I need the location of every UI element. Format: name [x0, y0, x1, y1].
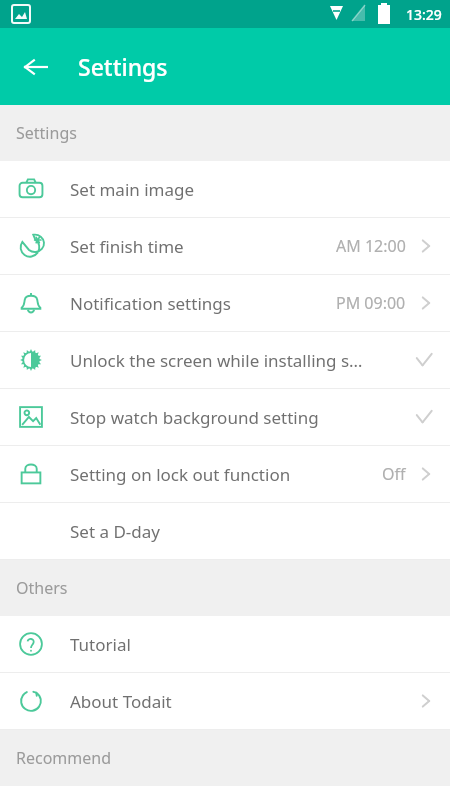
staticText: Off	[382, 463, 406, 485]
staticText: Set finish time	[70, 235, 336, 258]
staticText: Others	[16, 577, 68, 599]
staticText: Set a D-day	[70, 520, 436, 543]
staticText: Stop watch background setting	[70, 406, 412, 429]
staticText: Settings	[16, 122, 77, 144]
staticText: Tutorial	[70, 633, 436, 656]
button[interactable]: Unlock the screen while installing s…	[0, 332, 450, 389]
button[interactable]: Set main image	[0, 161, 450, 218]
button[interactable]: Stop watch background setting	[0, 389, 450, 446]
button[interactable]: Set finish time	[0, 218, 450, 275]
button[interactable]: Setting on lock out function	[0, 446, 450, 503]
staticText: 13:29	[406, 5, 442, 24]
button[interactable]: Tutorial	[0, 616, 450, 673]
button[interactable]: About Todait	[0, 673, 450, 730]
staticText: About Todait	[70, 690, 416, 713]
button[interactable]: Notification settings	[0, 275, 450, 332]
staticText: Notification settings	[70, 292, 336, 315]
staticText: Unlock the screen while installing s…	[70, 349, 412, 372]
button[interactable]: Back	[14, 45, 58, 89]
staticText: Set main image	[70, 178, 436, 201]
staticText: PM 09:00	[336, 292, 406, 314]
staticText: Recommend	[16, 747, 112, 769]
staticText: AM 12:00	[336, 235, 406, 257]
button[interactable]: Set a D-day	[0, 503, 450, 560]
staticText: Setting on lock out function	[70, 463, 382, 486]
staticText: Settings	[78, 51, 168, 82]
